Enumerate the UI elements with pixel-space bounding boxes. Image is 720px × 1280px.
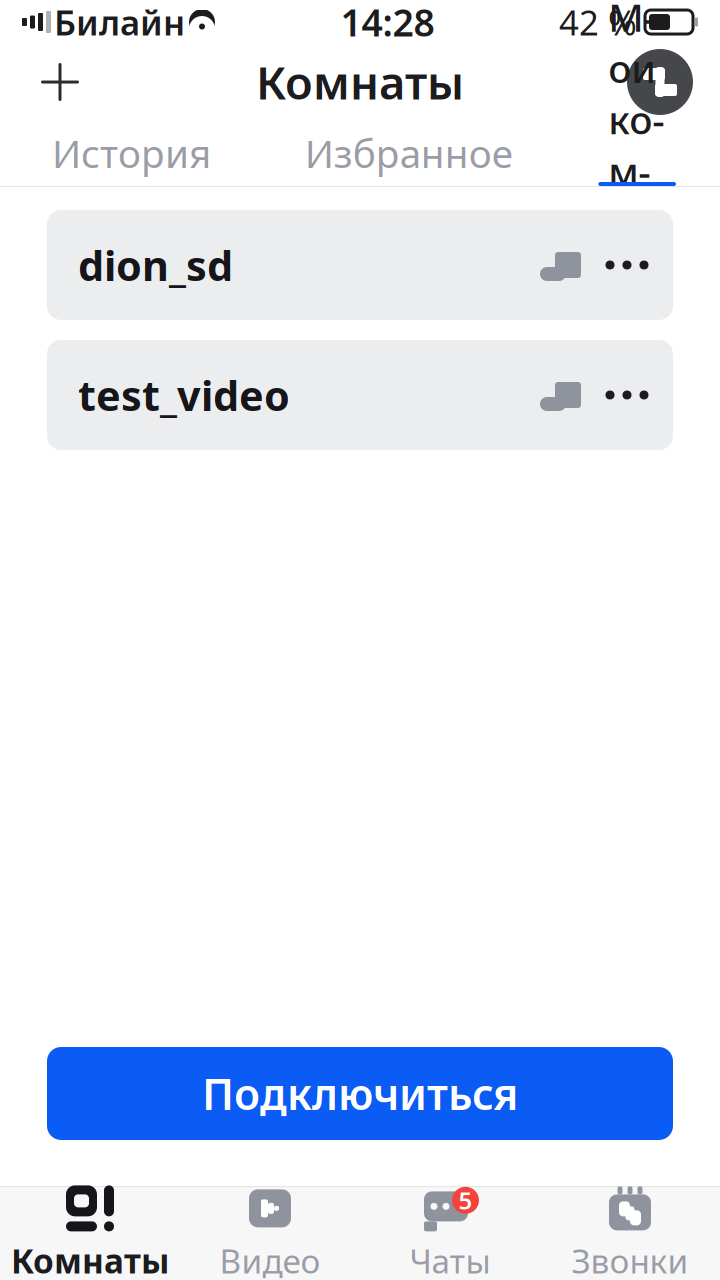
- staticText: Видео: [219, 1238, 320, 1280]
- staticText: История: [52, 127, 211, 179]
- staticText: Комнаты: [256, 52, 464, 112]
- button[interactable]: dion_sd: [47, 210, 673, 320]
- button[interactable]: Видео: [180, 1187, 360, 1280]
- button[interactable]: Мои комнаты: [598, 120, 676, 186]
- staticText: 5: [458, 1184, 472, 1216]
- staticText: Чаты: [409, 1238, 490, 1280]
- staticText: 42 %: [559, 0, 637, 45]
- button[interactable]: Создать комнату: [22, 44, 98, 120]
- staticText: 14:28: [340, 0, 434, 47]
- staticText: test_video: [78, 368, 290, 422]
- button[interactable]: test_video: [47, 340, 673, 450]
- staticText: Комнаты: [11, 1238, 169, 1280]
- staticText: Избранное: [305, 127, 513, 179]
- staticText: Звонки: [571, 1238, 688, 1280]
- button[interactable]: Подключиться: [47, 1047, 673, 1140]
- button[interactable]: 5: [360, 1187, 540, 1280]
- staticText: Подключиться: [202, 1065, 518, 1122]
- staticText: Билайн: [54, 0, 185, 45]
- button[interactable]: Профиль: [622, 44, 698, 120]
- button[interactable]: Звонки: [540, 1187, 720, 1280]
- staticText: Мои комнаты: [608, 0, 666, 299]
- staticText: dion_sd: [78, 238, 233, 292]
- button[interactable]: Избранное: [297, 128, 521, 178]
- button[interactable]: История: [44, 128, 219, 178]
- button[interactable]: Комнаты: [0, 1187, 180, 1280]
